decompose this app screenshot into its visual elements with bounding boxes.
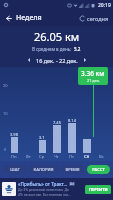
staticText: Пт xyxy=(69,154,75,160)
staticText: 5.2 xyxy=(74,46,81,52)
button[interactable]: РАССТ xyxy=(87,165,110,174)
button[interactable]: Back xyxy=(0,10,16,26)
staticText: Ad xyxy=(70,182,74,186)
staticText: 3.98 xyxy=(10,132,18,137)
button[interactable]: 3.1 xyxy=(35,67,49,160)
staticText: 0 xyxy=(4,147,7,152)
staticText: РАССТ xyxy=(92,167,105,173)
button[interactable]: Previous week xyxy=(24,55,34,65)
button[interactable]: «Прибыль» от Тракт… xyxy=(0,178,113,200)
staticText: 16 дек. - 22 дек. xyxy=(36,57,78,64)
button[interactable]: ПЕРЕЙТИ xyxy=(85,185,111,194)
staticText: сегодня xyxy=(87,15,109,22)
staticText: 7.45 xyxy=(53,120,61,125)
staticText: ШАГ xyxy=(10,167,20,173)
button[interactable]: 8.14 xyxy=(64,67,79,160)
staticText: Вс xyxy=(99,154,104,160)
staticText: 4% на востоке. Бесплатная ско… xyxy=(18,192,72,197)
button[interactable]: КАЛОРИЯ xyxy=(29,165,58,174)
staticText: 26.05 км xyxy=(34,29,80,44)
staticText: «Прибыль» от Тракт… xyxy=(18,181,68,187)
staticText: Сб xyxy=(84,154,90,160)
staticText: Чт xyxy=(54,154,59,160)
button[interactable]: Сб xyxy=(79,67,94,160)
staticText: 10 xyxy=(3,111,8,116)
button[interactable]: ВРЕМЯ xyxy=(61,165,84,174)
staticText: Ср xyxy=(39,154,45,160)
button[interactable]: Вс xyxy=(94,67,109,160)
staticText: До 3% реальной логистики. До xyxy=(18,187,69,192)
staticText: Вт xyxy=(26,154,31,160)
staticText: Пн xyxy=(11,154,17,160)
staticText: 21 дек. xyxy=(87,78,100,83)
button[interactable]: 3.36 км xyxy=(78,67,108,85)
button[interactable]: ШАГ xyxy=(3,165,26,174)
button[interactable]: Вт xyxy=(21,67,35,160)
button[interactable]: 3.98 xyxy=(7,67,21,160)
staticText: 20:19 xyxy=(98,2,111,9)
staticText: В среднем в день: xyxy=(32,46,72,52)
staticText: 20 xyxy=(3,83,8,88)
staticText: 8.14 xyxy=(68,118,76,123)
staticText: 3.36 км xyxy=(81,69,105,78)
staticText: ВРЕМЯ xyxy=(65,167,80,173)
staticText: КАЛОРИЯ xyxy=(33,167,54,173)
staticText: 3.1 xyxy=(39,135,45,140)
button[interactable]: сегодня xyxy=(76,15,113,22)
staticText: Неделя xyxy=(16,13,42,23)
button[interactable]: 7.45 xyxy=(49,67,64,160)
button[interactable]: Next week xyxy=(80,55,90,65)
staticText: ПЕРЕЙТИ xyxy=(89,187,108,192)
